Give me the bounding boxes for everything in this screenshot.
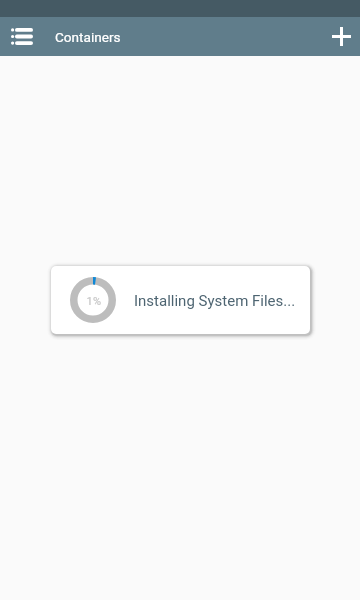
button[interactable]: Add (323, 17, 360, 56)
staticText: 1% (86, 295, 102, 308)
staticText: Installing System Files... (134, 292, 296, 310)
staticText: Containers (55, 29, 121, 45)
button[interactable]: Menu (0, 17, 44, 56)
